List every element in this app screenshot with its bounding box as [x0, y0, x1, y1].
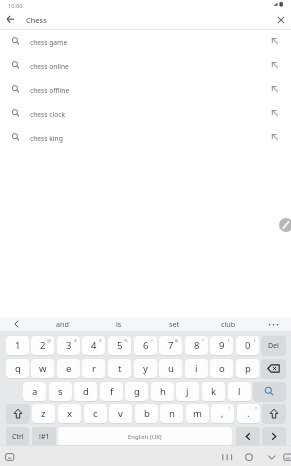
button[interactable]: [57, 336, 80, 356]
button[interactable]: [125, 382, 148, 402]
button[interactable]: [237, 404, 260, 424]
button[interactable]: [210, 359, 233, 379]
button[interactable]: [236, 359, 259, 379]
button[interactable]: [82, 336, 105, 356]
staticText: chess king: [30, 134, 63, 143]
staticText: 2: [40, 339, 46, 352]
button[interactable]: [151, 382, 174, 402]
button[interactable]: [261, 359, 286, 379]
staticText: chess offline: [30, 86, 70, 95]
staticText: !#1: [39, 432, 50, 442]
staticText: club: [221, 319, 236, 329]
button[interactable]: [32, 427, 56, 447]
button[interactable]: chess game: [0, 30, 291, 54]
button[interactable]: [23, 382, 46, 402]
button[interactable]: and: [41, 317, 83, 331]
button[interactable]: [262, 404, 286, 424]
button[interactable]: [3, 451, 16, 463]
button[interactable]: [236, 336, 259, 356]
staticText: (: [228, 337, 230, 343]
button[interactable]: [74, 382, 97, 402]
staticText: l: [238, 385, 241, 398]
staticText: *: [202, 337, 205, 343]
button[interactable]: [253, 382, 286, 402]
button[interactable]: [134, 359, 157, 379]
button[interactable]: [210, 336, 233, 356]
button[interactable]: [264, 450, 280, 464]
staticText: Del: [268, 341, 279, 351]
staticText: i: [195, 362, 198, 375]
button[interactable]: [159, 336, 182, 356]
staticText: q: [15, 362, 21, 375]
button[interactable]: [82, 359, 105, 379]
staticText: 9: [219, 339, 225, 352]
staticText: 7: [168, 339, 174, 352]
button[interactable]: [236, 427, 260, 447]
button[interactable]: [160, 404, 183, 424]
button[interactable]: [6, 336, 29, 356]
button[interactable]: [185, 336, 208, 356]
button[interactable]: [58, 427, 232, 447]
button[interactable]: chess online: [0, 54, 291, 78]
button[interactable]: [6, 404, 30, 424]
button[interactable]: [100, 382, 123, 402]
button[interactable]: [274, 13, 289, 27]
staticText: chess online: [30, 62, 69, 71]
button[interactable]: [262, 317, 285, 331]
button[interactable]: [108, 336, 131, 356]
staticText: ,: [221, 407, 224, 420]
staticText: a: [32, 385, 38, 398]
button[interactable]: club: [207, 317, 249, 331]
button[interactable]: [261, 336, 286, 356]
button[interactable]: [241, 450, 257, 464]
staticText: t: [118, 362, 122, 375]
button[interactable]: [6, 317, 26, 331]
staticText: 3: [66, 339, 72, 352]
button[interactable]: is: [98, 317, 140, 331]
button[interactable]: [185, 359, 208, 379]
staticText: o: [219, 362, 225, 375]
button[interactable]: [228, 382, 251, 402]
button[interactable]: [6, 359, 29, 379]
button[interactable]: [31, 359, 54, 379]
button[interactable]: [3, 12, 18, 27]
button[interactable]: [134, 336, 157, 356]
button[interactable]: [219, 450, 235, 464]
button[interactable]: [58, 404, 81, 424]
button[interactable]: [135, 404, 158, 424]
button[interactable]: set: [153, 317, 195, 331]
button[interactable]: [159, 359, 182, 379]
button[interactable]: [202, 382, 225, 402]
staticText: 6: [143, 339, 149, 352]
button[interactable]: [32, 404, 55, 424]
button[interactable]: [108, 359, 131, 379]
staticText: %: [124, 337, 128, 343]
button[interactable]: [49, 382, 72, 402]
staticText: p: [245, 362, 251, 375]
button[interactable]: [176, 382, 199, 402]
staticText: ^: [151, 337, 154, 343]
button[interactable]: [282, 450, 291, 464]
button[interactable]: [109, 404, 132, 424]
button[interactable]: [211, 404, 234, 424]
button[interactable]: [186, 404, 209, 424]
staticText: j: [186, 385, 189, 398]
staticText: Ctrl: [12, 432, 24, 442]
button[interactable]: chess king: [0, 126, 291, 150]
button[interactable]: [262, 427, 286, 447]
staticText: u: [168, 362, 174, 375]
button[interactable]: chess offline: [0, 78, 291, 102]
button[interactable]: [31, 336, 54, 356]
staticText: ?: [255, 405, 257, 411]
button[interactable]: [57, 359, 80, 379]
button[interactable]: [279, 218, 291, 232]
staticText: is: [116, 319, 122, 329]
button[interactable]: [84, 404, 107, 424]
staticText: English (UK): [128, 433, 162, 441]
staticText: y: [143, 362, 148, 375]
staticText: !: [229, 405, 231, 411]
staticText: c: [93, 407, 98, 420]
button[interactable]: [6, 427, 29, 447]
button[interactable]: chess clock: [0, 102, 291, 126]
staticText: w: [39, 362, 47, 375]
